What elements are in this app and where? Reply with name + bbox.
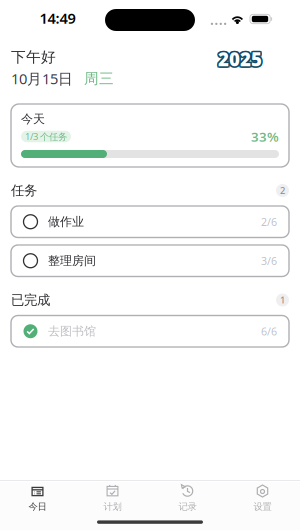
staticText: 2025 [217,48,261,73]
staticText: 6/6 [261,324,277,338]
staticText: 做作业 [48,214,84,229]
staticText: 计划 [103,501,121,512]
staticText: 3/6 [261,254,277,268]
staticText: 整理房间 [48,253,96,268]
staticText: 2025 [218,47,262,71]
staticText: 1 [280,294,285,306]
staticText: 下午好 [11,48,56,66]
staticText: 今日 [28,501,46,512]
staticText: 2025 [220,47,264,71]
button[interactable]: 今日 [0,485,75,512]
button[interactable]: 计划 [75,485,150,512]
staticText: 1/3 个任务 [25,130,67,143]
staticText: 2/6 [261,215,277,229]
staticText: 2025 [216,47,260,71]
staticText: 任务 [11,182,37,199]
staticText: 记录 [178,501,196,512]
button[interactable]: 记录 [150,485,225,512]
staticText: 已完成 [11,292,50,308]
staticText: 周三 [84,69,114,87]
staticText: 14:49 [39,8,75,28]
staticText: 2 [280,184,285,197]
staticText: 33% [251,128,279,145]
staticText: 2025 [219,48,263,73]
staticText: 2025 [217,45,261,70]
button[interactable]: 去图书馆 [11,315,289,347]
staticText: 2025 [218,45,262,70]
staticText: 2025 [218,48,262,73]
staticText: 今天 [21,112,45,126]
staticText: 2025 [219,45,263,70]
staticText: 10月15日 [11,69,73,88]
staticText: 去图书馆 [48,324,96,339]
button[interactable]: 设置 [225,485,300,512]
button[interactable]: 整理房间 [11,245,289,276]
button[interactable]: 做作业 [11,206,289,237]
staticText: 设置 [253,501,271,512]
